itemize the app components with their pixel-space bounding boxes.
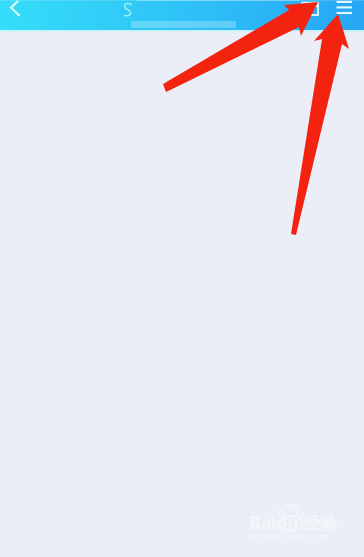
button[interactable]: Tabs [301, 0, 319, 30]
button[interactable]: Back [0, 0, 34, 30]
button[interactable]: Reader mode [122, 1, 134, 31]
button[interactable]: Menu [336, 0, 353, 30]
staticText: Baidu 经验 [249, 511, 337, 534]
